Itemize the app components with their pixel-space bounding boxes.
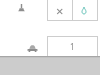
staticText: × (56, 2, 64, 20)
staticText: 1 (70, 41, 75, 52)
button[interactable]: Fuel (18, 4, 25, 12)
button[interactable]: × (47, 0, 72, 21)
button[interactable]: Car (27, 45, 38, 52)
button[interactable]: Water (73, 0, 98, 21)
button[interactable]: 1 (47, 36, 98, 59)
